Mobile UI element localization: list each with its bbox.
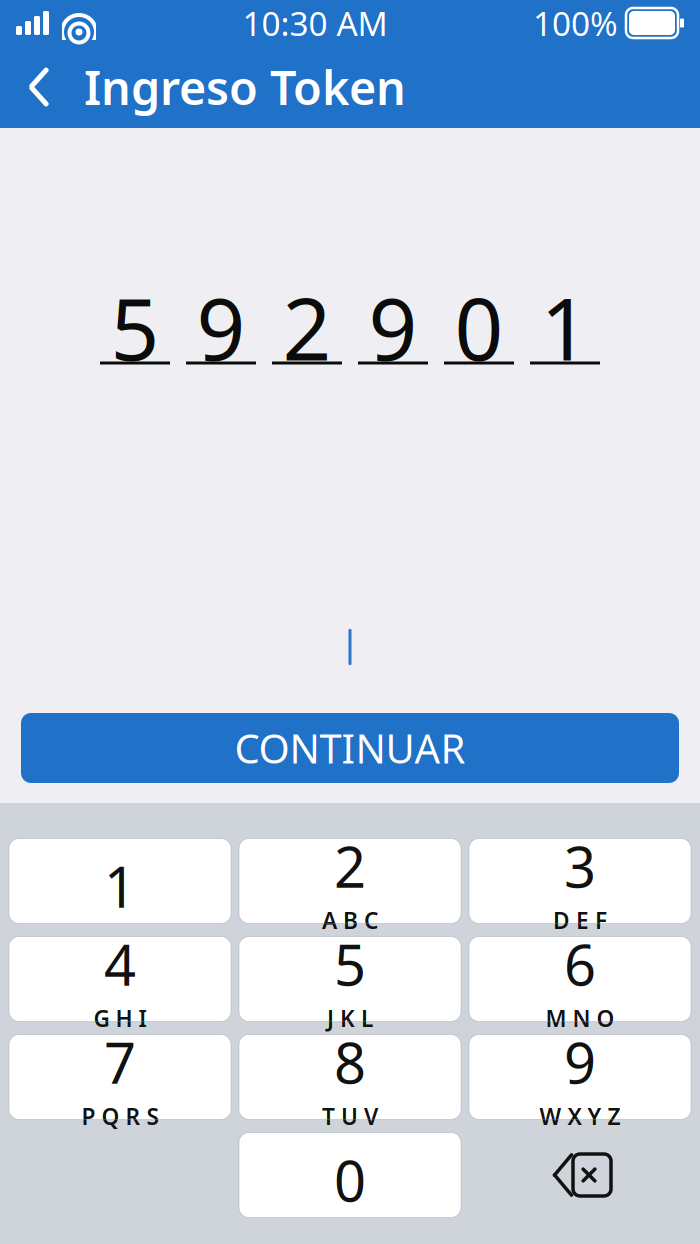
button[interactable]: Delete (469, 1132, 691, 1217)
staticText: 10:30 AM (242, 1, 387, 45)
staticText: 9 (368, 271, 417, 384)
staticText: 8 (334, 1025, 366, 1099)
button[interactable]: 8 (239, 1034, 461, 1119)
button[interactable]: 7 (9, 1034, 231, 1119)
staticText: 4 (104, 927, 136, 1001)
staticText: 0 (334, 1143, 366, 1217)
staticText: 1 (104, 849, 136, 923)
staticText: W X Y Z (539, 1101, 620, 1131)
staticText: 7 (104, 1025, 136, 1099)
staticText: 2 (282, 271, 331, 384)
staticText: 1 (540, 271, 589, 384)
staticText: 6 (564, 927, 596, 1001)
staticText: P Q R S (81, 1101, 158, 1131)
button[interactable]: Back (10, 56, 68, 118)
button[interactable]: 6 (469, 936, 691, 1021)
staticText: 9 (196, 271, 245, 384)
staticText: J K L (327, 1003, 373, 1033)
button[interactable]: 1 (9, 838, 231, 923)
staticText: CONTINUAR (234, 721, 465, 774)
button[interactable]: 3 (469, 838, 691, 923)
staticText: D E F (553, 905, 607, 935)
button[interactable]: 4 (9, 936, 231, 1021)
button[interactable]: 9 (469, 1034, 691, 1119)
staticText: M N O (545, 1003, 614, 1033)
staticText: Ingreso Token (84, 56, 406, 118)
button[interactable]: 5 (239, 936, 461, 1021)
staticText: G H I (93, 1003, 146, 1033)
button[interactable]: 2 (239, 838, 461, 923)
staticText: 5 (334, 927, 366, 1001)
staticText: 100% (533, 1, 618, 45)
staticText: T U V (322, 1101, 378, 1131)
button[interactable]: 0 (239, 1132, 461, 1217)
staticText: 5 (110, 271, 159, 384)
staticText: A B C (322, 905, 378, 935)
staticText: 3 (564, 829, 596, 903)
staticText: 2 (334, 829, 366, 903)
button[interactable]: CONTINUAR (21, 713, 679, 783)
staticText: 9 (564, 1025, 596, 1099)
staticText: 0 (454, 271, 503, 384)
